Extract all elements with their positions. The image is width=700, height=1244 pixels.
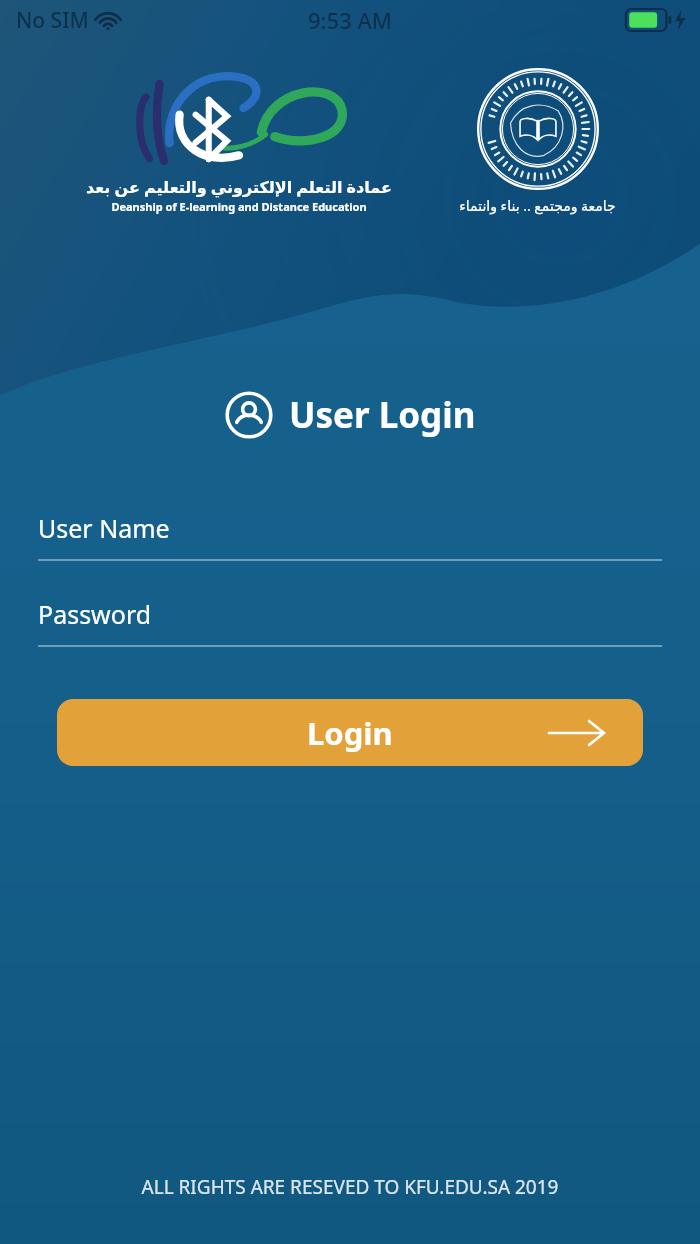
button[interactable]: Login	[57, 699, 643, 766]
staticText: Login	[307, 712, 393, 754]
staticText: No SIM	[16, 6, 89, 35]
staticText: ALL RIGHTS ARE RESEVED TO KFU.EDU.SA 201…	[0, 1174, 700, 1200]
staticText: 9:53 AM	[308, 5, 393, 35]
button[interactable]: Password	[38, 597, 662, 647]
staticText: Password	[38, 597, 152, 631]
staticText: عمادة التعلم الإلكتروني والتعليم عن بعد	[86, 176, 392, 198]
button[interactable]: User Name	[38, 511, 662, 561]
staticText: Deanship of E-learning and Distance Educ…	[111, 199, 367, 214]
staticText: جامعة ومجتمع .. بناء وانتماء	[459, 196, 616, 215]
staticText: User Login	[289, 391, 476, 439]
other: User	[225, 391, 273, 439]
staticText: User Name	[38, 511, 170, 545]
